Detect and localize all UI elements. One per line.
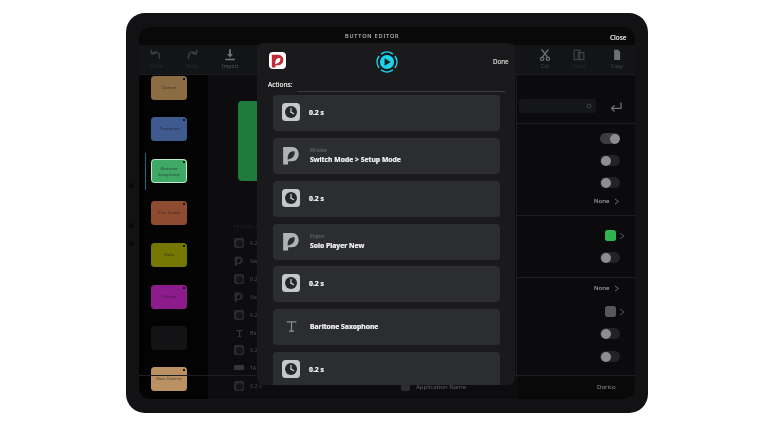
button[interactable]: Import — [214, 49, 246, 70]
button[interactable]: Window — [273, 138, 500, 174]
button[interactable]: Baritone Saxophone — [273, 309, 500, 345]
staticText: Baritone Saxophone — [310, 322, 379, 331]
button[interactable]: Trombone — [151, 117, 187, 141]
staticText: Cut — [541, 63, 550, 70]
staticText: Viola — [164, 252, 174, 258]
staticText: Celesta — [162, 294, 177, 300]
button[interactable]: Enter — [607, 98, 625, 116]
button[interactable]: None — [594, 197, 620, 205]
button[interactable]: Paste — [563, 49, 595, 70]
staticText: Elec. Guitar — [158, 210, 181, 216]
staticText: Trombone — [159, 126, 180, 132]
staticText: None — [594, 197, 610, 205]
staticText: 0.2 — [250, 311, 258, 318]
staticText: 0.2 — [250, 346, 258, 353]
staticText: Application Name — [416, 383, 467, 391]
staticText: Dorico — [597, 383, 616, 391]
button[interactable]: Search — [519, 99, 596, 113]
button[interactable]: Colour — [605, 230, 616, 241]
button[interactable]: Cut — [529, 49, 561, 70]
staticText: PRESSED ACTIONS — [234, 224, 275, 230]
button[interactable]: Toggle — [600, 177, 620, 188]
button[interactable]: 0.2 s — [273, 181, 500, 217]
staticText: 0.2 — [250, 275, 258, 282]
staticText: None — [594, 284, 610, 292]
button[interactable]: Toggle — [600, 252, 620, 263]
staticText: Redo — [186, 63, 199, 70]
staticText: Import — [222, 63, 239, 70]
button[interactable]: Copy — [601, 49, 633, 70]
staticText: Solo Player New — [310, 241, 365, 250]
staticText: Copy — [611, 63, 623, 70]
button[interactable]: Project — [273, 224, 500, 260]
button[interactable]: Elec. Guitar — [151, 201, 187, 225]
staticText: 0.2 s — [309, 194, 324, 203]
staticText: BUTTON EDITOR — [345, 32, 400, 40]
button[interactable]: Toggle — [600, 155, 620, 166]
button[interactable]: Bass Clarinet — [151, 367, 187, 391]
staticText: 0.2 — [250, 239, 258, 246]
button[interactable]: Toggle — [600, 328, 620, 339]
staticText: 0.2 s — [309, 108, 324, 117]
button[interactable]: Undo — [140, 49, 172, 70]
button[interactable]: Close — [604, 28, 633, 47]
button[interactable]: 0.2 s — [273, 95, 500, 131]
staticText: Clarinet — [161, 85, 177, 91]
staticText: Sw — [250, 257, 258, 264]
button[interactable]: Play — [376, 51, 398, 73]
staticText: Actions: — [268, 80, 293, 89]
staticText: Baritone Saxophone — [158, 166, 180, 177]
button[interactable]: Colour — [605, 306, 616, 317]
staticText: 0.2 s — [309, 279, 324, 288]
button[interactable]: None — [594, 284, 620, 292]
button[interactable]: Baritone Saxophone — [151, 159, 187, 183]
staticText: 0.2 s — [309, 365, 324, 374]
button[interactable]: S — [238, 101, 290, 181]
staticText: Switch Mode > Setup Mode — [310, 155, 401, 164]
button[interactable]: Dorico app — [269, 52, 286, 69]
button[interactable]: Done — [489, 53, 513, 69]
button[interactable]: Toggle — [600, 351, 620, 362]
staticText: Sol — [250, 293, 258, 300]
button[interactable]: Viola — [151, 243, 187, 267]
button[interactable]: 0.2 s — [273, 266, 500, 302]
button[interactable]: Celesta — [151, 285, 187, 309]
staticText: Ba — [250, 329, 257, 336]
button[interactable]: Toggle — [600, 133, 620, 144]
staticText: Close — [610, 33, 627, 42]
staticText: TA — [250, 364, 257, 371]
staticText: Window — [310, 147, 327, 153]
staticText: Project — [310, 233, 325, 239]
button[interactable]: Clarinet — [151, 76, 187, 100]
staticText: Undo — [150, 63, 163, 70]
staticText: Paste — [573, 63, 586, 70]
button[interactable]: Redo — [176, 49, 208, 70]
button[interactable]: 0.2 s — [273, 352, 500, 385]
staticText: 0.2 s — [250, 382, 262, 389]
staticText: Done — [493, 57, 509, 65]
staticText: Bass Clarinet — [156, 376, 182, 382]
